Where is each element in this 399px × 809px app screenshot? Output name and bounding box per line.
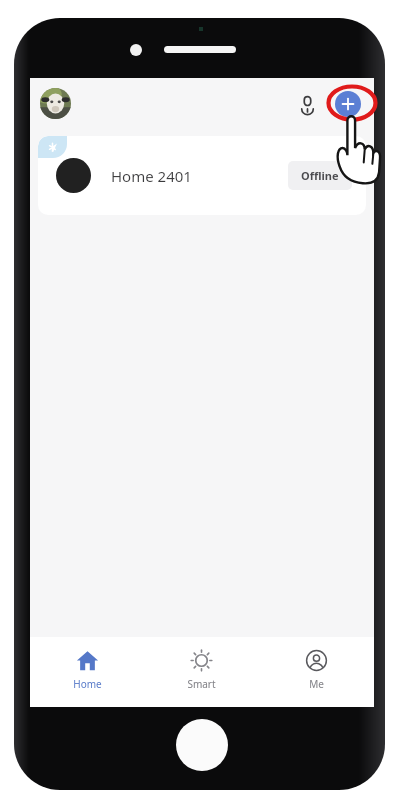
button[interactable]: Offline bbox=[288, 161, 352, 190]
button[interactable]: Profile bbox=[40, 88, 71, 119]
button[interactable]: Home 2401 bbox=[38, 136, 366, 215]
button[interactable]: Voice bbox=[292, 89, 322, 119]
staticText: Home 2401 bbox=[111, 166, 192, 186]
staticText: Smart bbox=[187, 677, 216, 691]
staticText: Me bbox=[309, 677, 324, 691]
staticText: Offline bbox=[301, 168, 339, 183]
button[interactable]: Home bbox=[30, 645, 144, 695]
button[interactable]: Add device bbox=[332, 88, 364, 120]
button[interactable]: Smart bbox=[144, 645, 259, 695]
button[interactable]: Me bbox=[259, 645, 374, 695]
staticText: Home bbox=[73, 677, 102, 691]
